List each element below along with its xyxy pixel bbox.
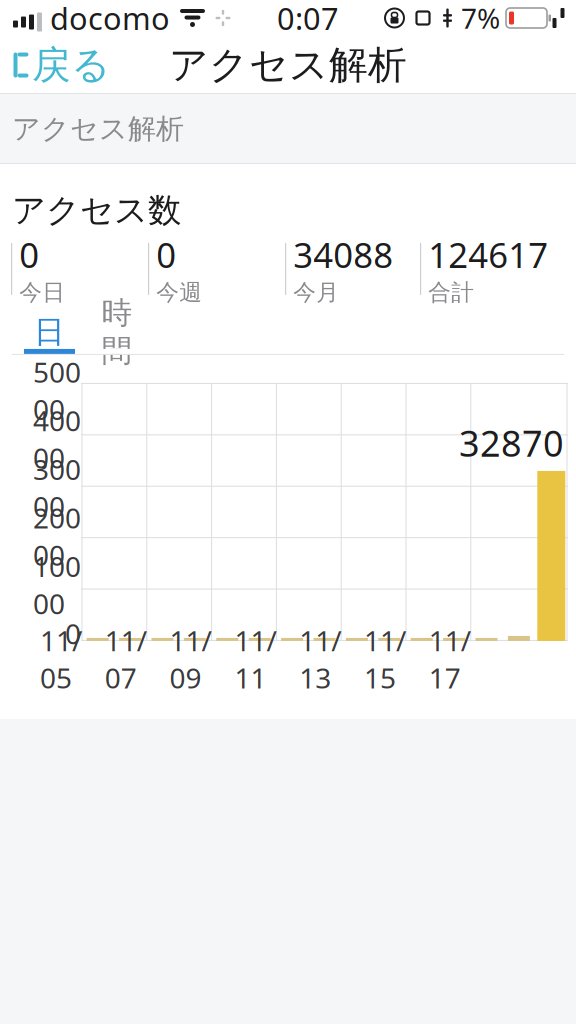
staticText: 11/09	[170, 622, 212, 696]
staticText: 11/15	[364, 622, 406, 696]
button[interactable]: 日	[24, 315, 75, 354]
button[interactable]: 時間	[88, 315, 146, 354]
staticText: 11/07	[105, 622, 147, 696]
staticText: 0	[156, 231, 176, 277]
staticText: 124617	[428, 231, 548, 277]
staticText: 40000	[33, 402, 81, 476]
staticText: 0	[19, 231, 39, 277]
staticText: 戻る	[32, 41, 111, 89]
button[interactable]: 戻る	[0, 36, 125, 94]
staticText: 32870	[459, 419, 564, 467]
staticText: 今週	[156, 278, 202, 306]
staticText: 0:07	[277, 0, 339, 38]
staticText: 20000	[33, 499, 81, 573]
staticText: アクセス数	[12, 190, 181, 231]
staticText: 時間	[101, 294, 132, 370]
staticText: 7%	[461, 0, 500, 37]
staticText: 10000	[33, 548, 81, 622]
staticText: 34088	[293, 231, 393, 277]
staticText: 0	[65, 615, 81, 652]
staticText: 日	[34, 313, 65, 351]
staticText: docomo	[50, 0, 170, 38]
staticText: 11/05	[40, 622, 82, 696]
staticText: 11/13	[299, 622, 341, 696]
staticText: 今日	[19, 278, 65, 306]
staticText: 今月	[293, 278, 339, 306]
staticText: アクセス解析	[169, 41, 407, 89]
staticText: 11/17	[429, 622, 471, 696]
staticText: 30000	[33, 450, 81, 525]
staticText: 11/11	[234, 622, 276, 696]
staticText: アクセス解析	[12, 112, 184, 146]
staticText: 50000	[33, 353, 81, 428]
staticText: 合計	[428, 278, 474, 306]
